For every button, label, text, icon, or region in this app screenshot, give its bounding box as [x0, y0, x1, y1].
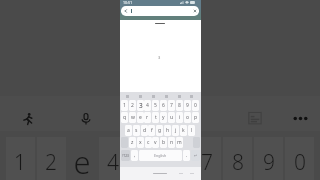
button[interactable]: o [184, 112, 191, 123]
button[interactable]: 3 [137, 100, 144, 111]
staticText: 1 [4, 148, 36, 177]
staticText: 7 [170, 102, 173, 109]
staticText: o [186, 114, 190, 121]
staticText: f [151, 127, 153, 134]
staticText: g [158, 127, 162, 134]
staticText: w [131, 114, 135, 121]
staticText: 9 [186, 102, 189, 109]
button[interactable]: 8 [176, 100, 183, 111]
button[interactable]: y [160, 112, 167, 123]
button[interactable]: n [168, 137, 175, 148]
button[interactable]: English [139, 150, 182, 161]
button[interactable]: r [144, 112, 151, 123]
button[interactable]: c [145, 137, 152, 148]
staticText: 5 [128, 148, 160, 177]
button[interactable]: 6 [160, 100, 167, 111]
button[interactable]: d [141, 125, 148, 136]
staticText: 6 [162, 102, 165, 109]
button[interactable]: t [152, 112, 159, 123]
staticText: English [154, 153, 167, 158]
staticText: m [177, 139, 182, 146]
staticText: 0 [284, 148, 316, 177]
button[interactable]: i [176, 112, 183, 123]
staticText: 4 [146, 102, 149, 109]
staticText: p [194, 114, 198, 121]
staticText: v [154, 139, 157, 146]
button[interactable]: 7 [168, 100, 175, 111]
staticText: n [170, 139, 174, 146]
staticText: d [143, 127, 147, 134]
staticText: z [131, 139, 134, 146]
button[interactable]: 4 [144, 100, 151, 111]
button[interactable]: l [188, 125, 195, 136]
staticText: 6 [160, 148, 192, 177]
staticText: j [175, 127, 177, 134]
staticText: a [127, 127, 130, 134]
staticText: b [162, 139, 166, 146]
staticText: t [155, 114, 157, 121]
staticText: ↵ [194, 153, 198, 158]
staticText: h [166, 127, 170, 134]
staticText: s [135, 127, 138, 134]
staticText: e [139, 114, 142, 121]
button[interactable]: s [133, 125, 140, 136]
staticText: 9 [253, 148, 285, 177]
staticText: i [179, 114, 181, 121]
button[interactable]: 5 [152, 100, 159, 111]
button[interactable]: e [137, 112, 144, 123]
staticText: l [191, 127, 193, 134]
button[interactable]: j [172, 125, 179, 136]
button[interactable]: . [183, 150, 190, 161]
button[interactable]: x [137, 137, 144, 148]
button[interactable]: w [129, 112, 136, 123]
button[interactable]: More options [290, 108, 310, 128]
staticText: . [186, 152, 188, 159]
button[interactable]: k [180, 125, 187, 136]
button[interactable]: v [152, 137, 159, 148]
staticText: 4 [97, 148, 129, 177]
button[interactable]: Stickers [16, 107, 39, 130]
button[interactable]: Enter [191, 150, 200, 161]
button[interactable]: u [168, 112, 175, 123]
staticText: y [162, 114, 165, 121]
button[interactable]: g [156, 125, 163, 136]
staticText: 0 [194, 102, 197, 109]
button[interactable]: 1 [121, 100, 128, 111]
staticText: , [134, 152, 136, 159]
staticText: 8 [222, 148, 254, 177]
staticText: r [146, 114, 149, 121]
button[interactable]: 9 [184, 100, 191, 111]
button[interactable]: p [192, 112, 199, 123]
button[interactable]: , [131, 150, 138, 161]
button[interactable]: a [125, 125, 132, 136]
staticText: 7 [191, 148, 223, 177]
staticText: 5 [154, 102, 157, 109]
button[interactable] [121, 6, 199, 16]
staticText: 2 [35, 148, 67, 177]
staticText: 8 [178, 102, 181, 109]
staticText: 3 [158, 55, 161, 60]
staticText: x [139, 139, 142, 146]
button[interactable]: h [164, 125, 171, 136]
button[interactable]: b [160, 137, 167, 148]
button[interactable]: Translate [243, 106, 267, 130]
button[interactable]: 2 [129, 100, 136, 111]
button[interactable]: f [148, 125, 155, 136]
button[interactable]: 0 [192, 100, 199, 111]
staticText: q [123, 114, 127, 121]
staticText: 1 [123, 102, 126, 109]
button[interactable]: Voice input [74, 107, 97, 130]
button[interactable]: m [176, 137, 183, 148]
button[interactable]: ?123 [121, 150, 130, 161]
button[interactable]: z [129, 137, 136, 148]
button[interactable]: q [121, 112, 128, 123]
staticText: k [182, 127, 185, 134]
